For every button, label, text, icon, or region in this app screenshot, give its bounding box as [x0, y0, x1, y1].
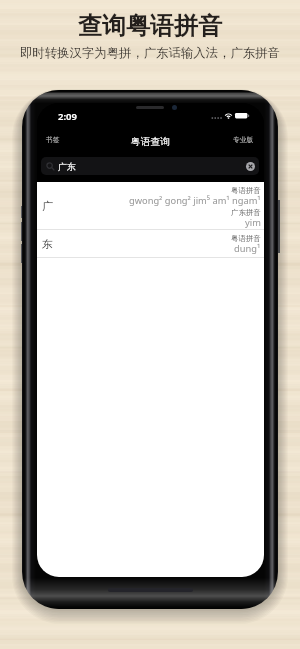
staticText: 粤语查询 — [37, 136, 264, 148]
staticText: 粤语拼音 — [231, 186, 261, 195]
staticText: 广东 — [58, 161, 76, 172]
other: Clear text — [246, 162, 255, 171]
staticText: 即时转换汉字为粤拼，广东话输入法，广东拼音 — [0, 45, 300, 61]
staticText: 2:09 — [58, 110, 77, 123]
staticText: 专业版 — [233, 135, 254, 144]
button[interactable]: Search — [41, 157, 259, 175]
staticText: 书签 — [46, 135, 60, 144]
staticText: dung¹ — [234, 242, 261, 255]
staticText: yim — [245, 216, 261, 229]
staticText: gwong² gong² jim⁵ am¹ ngam¹ — [129, 194, 261, 207]
button[interactable]: 书签 — [38, 129, 68, 149]
button[interactable]: 东 — [37, 230, 264, 258]
button[interactable]: 广 — [37, 182, 264, 230]
staticText: 广东拼音 — [231, 208, 261, 217]
staticText: 广 — [42, 199, 53, 213]
staticText: 粤语拼音 — [231, 234, 261, 243]
staticText: 东 — [42, 237, 53, 251]
button[interactable]: 专业版 — [227, 129, 259, 149]
other: Search — [46, 162, 55, 171]
staticText: 查询粤语拼音 — [0, 11, 300, 41]
